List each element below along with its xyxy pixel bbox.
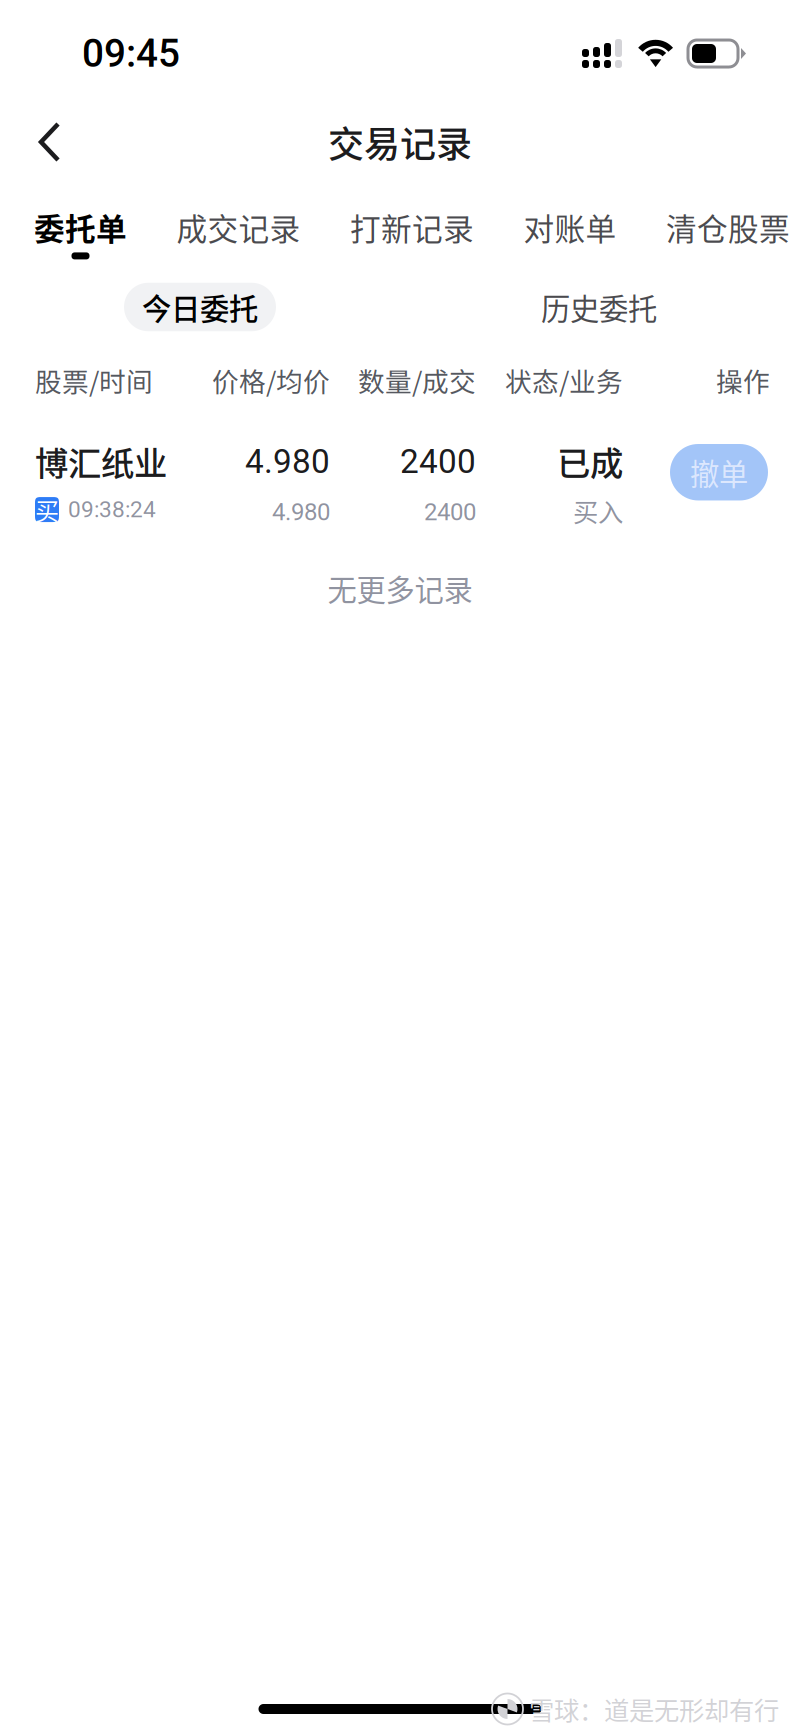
button[interactable]: 今日委托 — [124, 283, 276, 331]
staticText: 成交记录 — [176, 205, 300, 249]
button[interactable]: 对账单 — [523, 205, 616, 249]
staticText: 清仓股票 — [666, 205, 790, 249]
staticText: 09:38:24 — [68, 496, 156, 523]
staticText: 已成 — [557, 437, 623, 485]
staticText: 2400 — [400, 442, 476, 481]
staticText: 状态/业务 — [505, 361, 623, 399]
staticText: 交易记录 — [328, 116, 472, 168]
staticText: 数量/成交 — [358, 361, 476, 399]
staticText: 2400 — [424, 498, 476, 526]
button[interactable]: 打新记录 — [350, 205, 474, 249]
button[interactable]: 撤单 — [670, 444, 768, 500]
button[interactable]: 委托单 — [34, 205, 127, 259]
staticText: 打新记录 — [350, 205, 474, 249]
staticText: 历史委托 — [541, 286, 657, 328]
staticText: 撤单 — [690, 451, 748, 493]
staticText: 操作 — [716, 361, 770, 399]
staticText: 09:45 — [82, 31, 180, 76]
staticText: 股票/时间 — [35, 361, 153, 399]
staticText: 4.980 — [272, 498, 330, 526]
staticText: 价格/均价 — [212, 361, 330, 399]
staticText: 对账单 — [523, 205, 616, 249]
staticText: 买入 — [573, 492, 623, 529]
staticText: 委托单 — [34, 205, 127, 249]
staticText: 买 — [35, 492, 59, 527]
button[interactable]: 成交记录 — [176, 205, 300, 249]
button[interactable]: 历史委托 — [523, 283, 675, 331]
staticText: 博汇纸业 — [35, 437, 167, 485]
button[interactable]: Back — [14, 106, 86, 178]
button[interactable]: 清仓股票 — [666, 205, 790, 249]
staticText: 今日委托 — [142, 286, 258, 328]
staticText: 4.980 — [245, 442, 330, 481]
staticText: 雪球：道是无形却有行 — [529, 1691, 779, 1727]
staticText: 无更多记录 — [327, 567, 472, 609]
